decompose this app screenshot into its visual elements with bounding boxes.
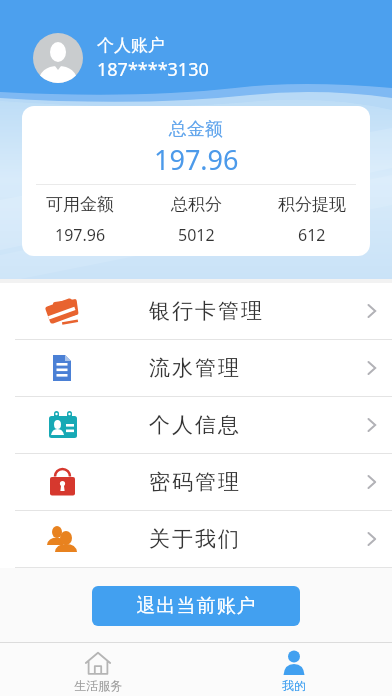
staticText: 生活服务 — [74, 678, 122, 693]
staticText: 关于我们 — [148, 526, 240, 552]
staticText: 总金额 — [169, 118, 223, 141]
staticText: 总积分 — [171, 194, 222, 215]
staticText: 密码管理 — [148, 469, 240, 495]
button[interactable]: 个人账户 — [33, 33, 209, 83]
button[interactable]: 生活服务 — [0, 643, 196, 696]
staticText: 5012 — [178, 224, 215, 246]
staticText: 197.96 — [154, 141, 239, 178]
staticText: 积分提现 — [278, 194, 346, 215]
staticText: 可用金额 — [46, 194, 114, 215]
staticText: 流水管理 — [148, 355, 240, 381]
staticText: 187****3130 — [97, 57, 209, 82]
button[interactable]: 关于我们 — [0, 511, 392, 567]
button[interactable]: 退出当前账户 — [92, 586, 300, 626]
button[interactable]: 我的 — [196, 643, 392, 696]
button[interactable]: 密码管理 — [0, 454, 392, 510]
staticText: 612 — [298, 224, 326, 246]
button[interactable]: 个人信息 — [0, 397, 392, 453]
button[interactable]: 流水管理 — [0, 340, 392, 396]
staticText: 退出当前账户 — [136, 594, 256, 618]
button[interactable]: 银行卡管理 — [0, 283, 392, 339]
staticText: 197.96 — [55, 224, 106, 246]
staticText: 银行卡管理 — [148, 298, 263, 324]
staticText: 个人信息 — [148, 412, 240, 438]
staticText: 个人账户 — [97, 35, 165, 56]
staticText: 我的 — [282, 678, 306, 693]
